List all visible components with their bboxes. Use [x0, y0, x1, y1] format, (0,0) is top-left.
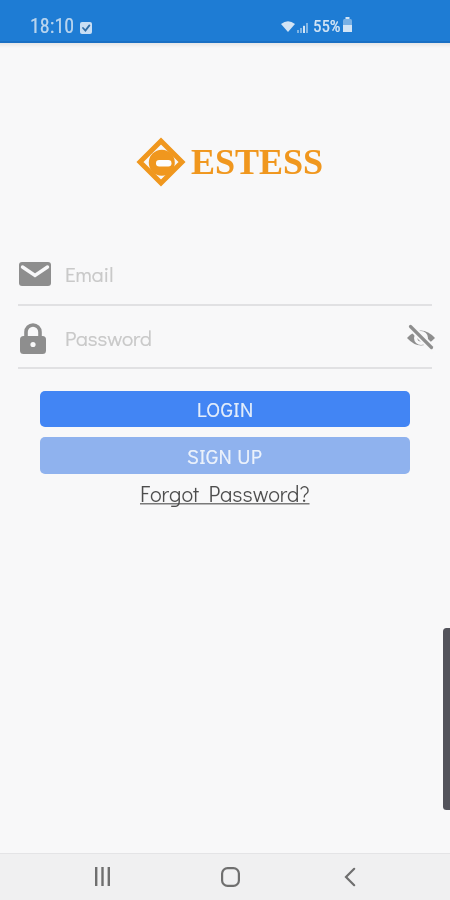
staticText: 55% [313, 16, 341, 36]
button[interactable]: Forgot Password? [140, 479, 310, 508]
button[interactable]: Password [20, 318, 436, 358]
staticText: ESTESS [191, 142, 324, 182]
button[interactable] [198, 853, 262, 900]
button[interactable] [406, 325, 436, 351]
button[interactable] [318, 853, 382, 900]
staticText: Password [65, 324, 152, 352]
staticText: SIGN UP [187, 443, 263, 469]
staticText: Email [65, 260, 114, 288]
button[interactable] [70, 853, 134, 900]
staticText: Forgot Password? [140, 479, 310, 508]
button[interactable]: LOGIN [40, 391, 410, 427]
staticText: LOGIN [197, 396, 254, 422]
staticText: 18:10 [30, 14, 75, 37]
button[interactable]: SIGN UP [40, 437, 410, 474]
button[interactable]: Email [19, 255, 432, 293]
